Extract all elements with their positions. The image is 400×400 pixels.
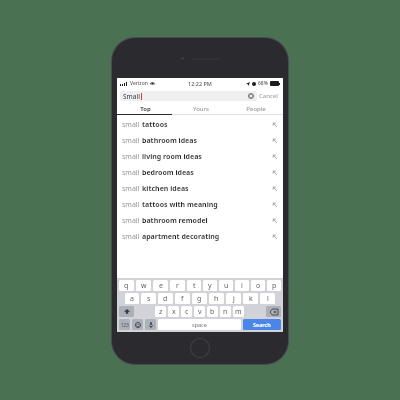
button[interactable]: q (119, 280, 134, 291)
staticText: tattoos with meaning (142, 200, 218, 210)
staticText: o (256, 281, 261, 291)
button[interactable]: j (226, 293, 241, 304)
staticText: c (185, 307, 189, 317)
staticText: small (122, 152, 142, 162)
staticText: small (122, 232, 142, 242)
button[interactable]: o (251, 280, 265, 291)
staticText: v (198, 307, 202, 317)
button[interactable]: small (117, 181, 283, 197)
staticText: Yours (193, 105, 209, 113)
staticText: f (181, 294, 184, 304)
other: Insert suggestion (272, 170, 278, 176)
staticText: y (208, 281, 212, 291)
button[interactable]: y (203, 280, 217, 291)
button[interactable]: s (141, 293, 156, 304)
button[interactable]: w (136, 280, 151, 291)
button[interactable]: n (220, 306, 231, 317)
button[interactable]: Small (120, 91, 257, 101)
button[interactable]: Clear search (248, 93, 254, 99)
staticText: small (122, 184, 142, 194)
button[interactable]: u (219, 280, 233, 291)
button[interactable]: x (168, 306, 179, 317)
button[interactable]: Emoji (132, 319, 143, 330)
staticText: k (249, 294, 253, 304)
button[interactable]: Shift (119, 306, 134, 317)
staticText: s (147, 294, 151, 304)
staticText: small (122, 136, 142, 146)
staticText: apartment decorating (142, 232, 220, 242)
staticText: w (141, 281, 147, 291)
staticText: kitchen ideas (142, 184, 189, 194)
staticText: a (130, 294, 134, 304)
button[interactable]: z (155, 306, 166, 317)
staticText: 123 (121, 322, 129, 328)
other: Insert suggestion (272, 122, 278, 128)
button[interactable]: l (260, 293, 275, 304)
staticText: b (210, 307, 215, 317)
button[interactable]: f (175, 293, 190, 304)
button[interactable]: v (194, 306, 205, 317)
button[interactable]: h (209, 293, 224, 304)
button[interactable]: b (207, 306, 218, 317)
staticText: living room ideas (142, 152, 202, 162)
staticText: small (122, 200, 142, 210)
staticText: small (122, 120, 142, 130)
staticText: space (192, 321, 207, 328)
other: Insert suggestion (272, 138, 278, 144)
button[interactable]: small (117, 149, 283, 165)
staticText: bedroom ideas (142, 168, 194, 178)
button[interactable]: e (153, 280, 168, 291)
button[interactable]: small (117, 213, 283, 229)
button[interactable]: People (228, 103, 283, 114)
other: Insert suggestion (272, 218, 278, 224)
staticText: People (246, 105, 266, 113)
staticText: bathroom ideas (142, 136, 197, 146)
staticText: q (124, 281, 129, 291)
button[interactable]: small (117, 229, 283, 245)
button[interactable]: Numbers (119, 319, 130, 330)
staticText: m (235, 307, 242, 317)
staticText: p (272, 281, 277, 291)
button[interactable]: Yours (173, 103, 228, 114)
button[interactable]: p (267, 280, 281, 291)
button[interactable]: Search (243, 319, 281, 330)
staticText: 68% (258, 80, 268, 87)
button[interactable]: small (117, 117, 283, 133)
staticText: n (223, 307, 228, 317)
staticText: small (122, 168, 142, 178)
staticText: h (214, 294, 219, 304)
staticText: u (224, 281, 229, 291)
staticText: e (159, 281, 163, 291)
button[interactable]: i (235, 280, 249, 291)
staticText: x (172, 307, 176, 317)
other: Insert suggestion (272, 186, 278, 192)
button[interactable]: Dictate (145, 319, 156, 330)
staticText: d (163, 294, 168, 304)
staticText: z (159, 307, 163, 317)
staticText: tattoos (142, 120, 168, 130)
button[interactable]: small (117, 133, 283, 149)
button[interactable]: d (158, 293, 173, 304)
staticText: small (122, 216, 142, 226)
button[interactable]: m (233, 306, 244, 317)
button[interactable]: a (125, 293, 139, 304)
button[interactable]: Cancel (257, 91, 280, 101)
button[interactable]: r (170, 280, 185, 291)
other: Insert suggestion (272, 154, 278, 160)
staticText: l (267, 294, 269, 304)
button[interactable]: Backspace (266, 306, 281, 317)
button[interactable]: c (181, 306, 192, 317)
button[interactable]: k (243, 293, 258, 304)
staticText: Top (140, 105, 151, 113)
button[interactable]: small (117, 197, 283, 213)
staticText: Small (123, 92, 140, 101)
staticText: Search (253, 321, 271, 328)
button[interactable]: space (158, 319, 241, 330)
button[interactable]: small (117, 165, 283, 181)
staticText: bathroom remodel (142, 216, 208, 226)
button[interactable]: Top (117, 103, 173, 114)
button[interactable]: t (187, 280, 201, 291)
staticText: g (197, 294, 202, 304)
staticText: Verizon (130, 80, 148, 87)
button[interactable]: g (192, 293, 207, 304)
